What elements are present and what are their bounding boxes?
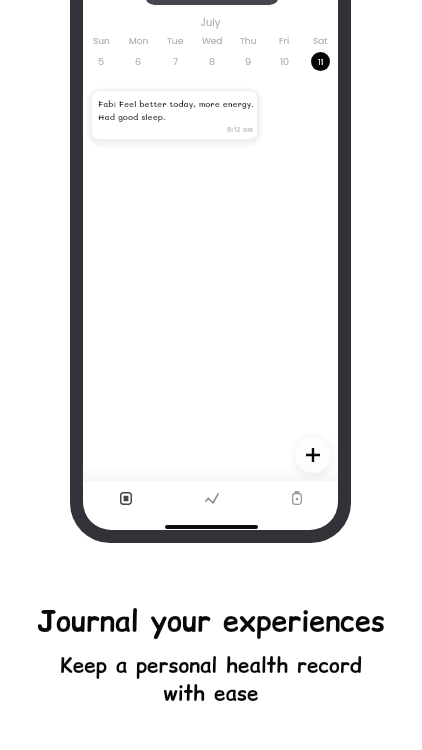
- staticText: Sun: [93, 35, 110, 48]
- button[interactable]: 11: [311, 52, 330, 71]
- staticText: 9:12 am: [227, 125, 253, 134]
- button[interactable]: Trends: [199, 485, 225, 511]
- button[interactable]: Fab! Feel better today, more energy. Had…: [92, 91, 257, 139]
- staticText: Thu: [240, 35, 257, 48]
- staticText: Mon: [129, 35, 149, 48]
- staticText: 5: [98, 55, 105, 68]
- staticText: Wed: [202, 35, 223, 48]
- staticText: 11: [318, 55, 324, 68]
- staticText: 8: [209, 55, 216, 68]
- button[interactable]: Medication: [284, 485, 310, 511]
- button[interactable]: Journal: [113, 485, 139, 511]
- staticText: 9: [245, 55, 252, 68]
- button[interactable]: Add entry: [295, 437, 331, 473]
- button[interactable]: 6: [129, 52, 148, 71]
- button[interactable]: 7: [166, 52, 185, 71]
- staticText: Fab! Feel better today, more energy. Had…: [98, 98, 254, 122]
- staticText: Keep a personal health record with ease: [0, 651, 422, 708]
- staticText: 10: [280, 55, 290, 68]
- staticText: July: [83, 15, 338, 29]
- button[interactable]: 9: [239, 52, 258, 71]
- staticText: Journal your experiences: [0, 601, 422, 641]
- button[interactable]: 5: [92, 52, 111, 71]
- button[interactable]: 10: [275, 52, 294, 71]
- staticText: Fri: [279, 35, 290, 48]
- staticText: Tue: [167, 35, 184, 48]
- button[interactable]: 8: [203, 52, 222, 71]
- staticText: 7: [173, 55, 179, 68]
- staticText: Sat: [313, 35, 328, 48]
- staticText: 6: [135, 55, 142, 68]
